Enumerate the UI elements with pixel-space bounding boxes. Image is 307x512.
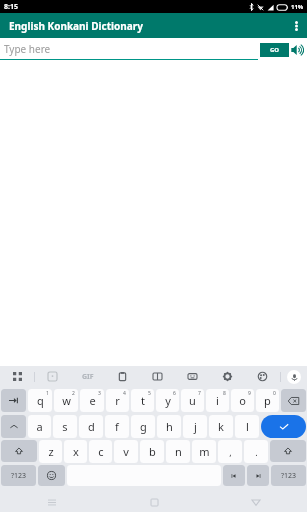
button[interactable]: ?123: [1, 465, 36, 486]
staticText: r: [115, 393, 120, 408]
staticText: Type here: [4, 42, 51, 56]
staticText: x: [73, 444, 79, 459]
staticText: k: [218, 419, 224, 434]
button[interactable]: c: [89, 440, 112, 463]
button[interactable]: v: [114, 440, 138, 463]
button[interactable]: Translate: [140, 366, 175, 387]
staticText: 0: [273, 390, 276, 397]
button[interactable]: Themes: [245, 366, 280, 387]
staticText: t: [141, 393, 145, 408]
staticText: z: [48, 444, 54, 459]
button[interactable]: Enter: [261, 415, 306, 438]
staticText: .: [255, 446, 258, 458]
staticText: a: [36, 419, 43, 434]
staticText: 3: [98, 390, 101, 397]
button[interactable]: ,: [218, 440, 242, 463]
button[interactable]: Backspace: [281, 389, 306, 412]
staticText: v: [123, 444, 129, 459]
button[interactable]: Move cursor right: [247, 465, 269, 486]
button[interactable]: .: [244, 440, 268, 463]
button[interactable]: ?123: [271, 465, 306, 486]
staticText: 4: [123, 390, 126, 397]
staticText: m: [199, 444, 210, 459]
button[interactable]: Shift: [1, 440, 37, 462]
button[interactable]: b: [140, 440, 164, 463]
staticText: 6: [173, 390, 176, 397]
button[interactable]: h: [157, 415, 181, 438]
staticText: d: [88, 419, 95, 434]
button[interactable]: Tab: [1, 389, 26, 412]
staticText: j: [194, 419, 197, 434]
staticText: 8: [223, 390, 226, 397]
staticText: 1: [46, 390, 49, 397]
staticText: 2: [72, 390, 75, 397]
button[interactable]: Speak: [289, 38, 307, 64]
staticText: ?123: [11, 471, 27, 481]
staticText: o: [239, 393, 246, 408]
staticText: y: [165, 393, 171, 408]
button[interactable]: r: [106, 389, 129, 412]
staticText: ?123: [281, 471, 297, 481]
button[interactable]: Clipboard: [105, 366, 140, 387]
button[interactable]: s: [53, 415, 77, 438]
staticText: ,: [229, 446, 232, 458]
button[interactable]: k: [209, 415, 233, 438]
button[interactable]: Voice input: [281, 366, 307, 387]
staticText: i: [216, 393, 219, 408]
button[interactable]: Type here: [0, 38, 258, 64]
button[interactable]: GIF: [70, 366, 105, 387]
staticText: 9: [248, 390, 251, 397]
staticText: b: [149, 444, 156, 459]
button[interactable]: j: [183, 415, 207, 438]
staticText: l: [246, 419, 249, 434]
button[interactable]: m: [192, 440, 216, 463]
staticText: q: [37, 393, 44, 408]
staticText: GIF: [82, 372, 94, 382]
staticText: f: [115, 419, 119, 434]
button[interactable]: g: [131, 415, 155, 438]
button[interactable]: a: [28, 415, 51, 438]
staticText: English Konkani Dictionary: [9, 19, 143, 33]
staticText: n: [175, 444, 182, 459]
button[interactable]: x: [64, 440, 87, 463]
staticText: e: [89, 393, 96, 408]
button[interactable]: l: [235, 415, 259, 438]
staticText: 5: [148, 390, 151, 397]
button[interactable]: f: [105, 415, 129, 438]
button[interactable]: w: [54, 389, 78, 412]
staticText: w: [62, 393, 71, 408]
button[interactable]: n: [166, 440, 190, 463]
button[interactable]: y: [156, 389, 179, 412]
button[interactable]: q: [28, 389, 52, 412]
button[interactable]: Shift: [1, 415, 26, 438]
button[interactable]: More options: [285, 13, 307, 38]
button[interactable]: Apps: [0, 366, 34, 387]
staticText: g: [140, 419, 147, 434]
button[interactable]: Move cursor left: [223, 465, 245, 486]
button[interactable]: d: [79, 415, 103, 438]
staticText: p: [264, 393, 271, 408]
staticText: s: [62, 419, 68, 434]
staticText: h: [166, 419, 173, 434]
button[interactable]: t: [131, 389, 154, 412]
button[interactable]: Back: [205, 492, 307, 512]
staticText: 7: [198, 390, 201, 397]
button[interactable]: u: [181, 389, 204, 412]
button[interactable]: Settings: [210, 366, 245, 387]
button[interactable]: e: [80, 389, 104, 412]
button[interactable]: o: [231, 389, 254, 412]
button[interactable]: Emoji: [38, 465, 65, 486]
button[interactable]: sticker: [35, 366, 70, 387]
button[interactable]: i: [206, 389, 229, 412]
staticText: GO: [270, 46, 280, 54]
button[interactable]: Stickers: [175, 366, 210, 387]
button[interactable]: p: [256, 389, 279, 412]
staticText: 11%: [291, 3, 304, 11]
button[interactable]: GO: [260, 43, 289, 57]
button[interactable]: Shift: [270, 440, 306, 462]
button[interactable]: z: [39, 440, 62, 463]
staticText: 8:15: [4, 2, 18, 12]
